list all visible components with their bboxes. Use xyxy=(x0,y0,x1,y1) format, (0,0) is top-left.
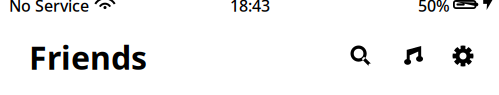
button[interactable]: Search xyxy=(341,34,381,78)
staticText: 18:43 xyxy=(230,0,270,16)
button[interactable]: Settings xyxy=(443,34,483,78)
staticText: No Service xyxy=(9,0,89,16)
button[interactable]: Music xyxy=(393,34,433,78)
staticText: Friends xyxy=(29,36,147,78)
staticText: 50% xyxy=(418,0,450,16)
